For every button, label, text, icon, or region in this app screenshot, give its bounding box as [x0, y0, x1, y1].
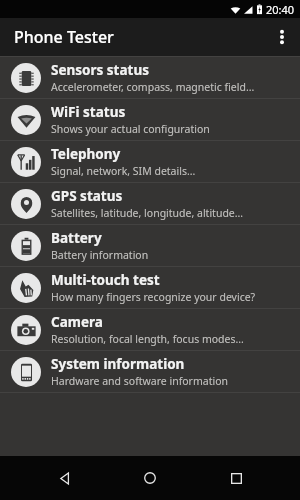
staticText: Hardware and software information	[51, 374, 228, 388]
staticText: GPS status	[51, 187, 123, 205]
button[interactable]: More options	[264, 18, 300, 56]
button[interactable]: Recent apps	[214, 456, 258, 500]
button[interactable]: Sensors status	[0, 57, 300, 98]
button[interactable]: Telephony	[0, 141, 300, 182]
button[interactable]: Home	[128, 456, 172, 500]
staticText: Phone Tester	[14, 26, 114, 48]
button[interactable]: WiFi status	[0, 99, 300, 140]
button[interactable]: Multi-touch test	[0, 267, 300, 308]
staticText: Battery information	[51, 248, 149, 262]
staticText: Battery	[51, 229, 102, 247]
button[interactable]: Camera	[0, 309, 300, 350]
staticText: Satellites, latitude, longitude, altitud…	[51, 206, 244, 220]
button[interactable]: System information	[0, 351, 300, 392]
button[interactable]: Battery	[0, 225, 300, 266]
staticText: Camera	[51, 313, 103, 331]
staticText: Sensors status	[51, 61, 149, 79]
staticText: Telephony	[51, 145, 121, 163]
staticText: Shows your actual configuration	[51, 122, 210, 136]
staticText: Multi-touch test	[51, 271, 160, 289]
button[interactable]: GPS status	[0, 183, 300, 224]
button[interactable]: Back	[42, 456, 86, 500]
staticText: Signal, network, SIM details…	[51, 164, 196, 178]
staticText: WiFi status	[51, 103, 126, 121]
staticText: System information	[51, 355, 185, 373]
staticText: Resolution, focal length, focus modes…	[51, 332, 244, 346]
staticText: Accelerometer, compass, magnetic field…	[51, 80, 255, 94]
staticText: How many fingers recognize your device?	[51, 290, 256, 304]
staticText: 20:40	[266, 2, 295, 17]
